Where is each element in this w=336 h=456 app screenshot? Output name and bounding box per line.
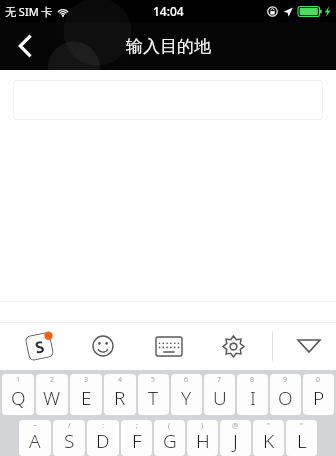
staticText: 7: [217, 375, 222, 385]
staticText: @: [232, 421, 239, 431]
staticText: L: [297, 428, 307, 454]
staticText: G: [163, 428, 177, 454]
button[interactable]: :: [87, 420, 119, 456]
button[interactable]: Settings: [212, 325, 254, 367]
staticText: S: [64, 428, 75, 454]
staticText: 14:04: [153, 3, 184, 19]
button[interactable]: ): [187, 420, 218, 456]
staticText: F: [132, 428, 142, 454]
button[interactable]: Back: [0, 22, 50, 70]
staticText: Q: [11, 385, 26, 411]
staticText: 1: [16, 375, 21, 385]
button[interactable]: Emoji: [82, 325, 124, 367]
staticText: (: [168, 421, 171, 431]
staticText: ": [300, 421, 303, 431]
button[interactable]: 4: [104, 374, 136, 415]
staticText: ~: [33, 421, 38, 431]
staticText: /: [68, 421, 71, 431]
staticText: O: [278, 385, 293, 411]
staticText: S: [33, 335, 46, 359]
button[interactable]: 6: [171, 374, 202, 415]
button[interactable]: ": [253, 420, 284, 456]
staticText: 4: [118, 375, 123, 385]
staticText: K: [263, 428, 275, 454]
staticText: U: [213, 385, 227, 411]
button[interactable]: 1: [2, 374, 34, 415]
staticText: ": [267, 421, 270, 431]
staticText: :: [102, 421, 104, 431]
staticText: 6: [184, 375, 189, 385]
button[interactable]: /: [53, 420, 85, 456]
button[interactable]: (: [154, 420, 185, 456]
staticText: 9: [283, 375, 288, 385]
staticText: H: [196, 428, 210, 454]
staticText: I: [250, 385, 256, 411]
staticText: D: [96, 428, 110, 454]
button[interactable]: @: [220, 420, 251, 456]
staticText: ): [201, 421, 204, 431]
staticText: A: [29, 428, 41, 454]
staticText: 5: [151, 375, 156, 385]
staticText: Y: [181, 385, 192, 411]
staticText: 8: [250, 375, 255, 385]
staticText: ;: [136, 421, 138, 431]
button[interactable]: ~: [19, 420, 51, 456]
staticText: W: [43, 385, 61, 411]
button[interactable]: 3: [70, 374, 102, 415]
staticText: J: [233, 428, 238, 454]
button[interactable]: Sogou input: [18, 325, 60, 367]
button[interactable]: Switch keyboard: [148, 325, 190, 367]
staticText: E: [81, 385, 92, 411]
staticText: 2: [50, 375, 55, 385]
staticText: 无 SIM 卡: [5, 4, 53, 19]
button[interactable]: 0: [303, 374, 334, 415]
button[interactable]: 8: [237, 374, 268, 415]
staticText: T: [148, 385, 159, 411]
button[interactable]: 5: [138, 374, 169, 415]
staticText: 输入目的地: [126, 36, 211, 57]
staticText: R: [114, 385, 126, 411]
staticText: P: [313, 385, 325, 411]
staticText: 0: [316, 375, 321, 385]
button[interactable]: ;: [121, 420, 152, 456]
staticText: 3: [84, 375, 89, 385]
button[interactable]: 7: [204, 374, 235, 415]
button[interactable]: 2: [36, 374, 68, 415]
button[interactable]: Hide keyboard: [282, 325, 336, 367]
button[interactable]: ": [286, 420, 317, 456]
button[interactable]: 9: [270, 374, 301, 415]
